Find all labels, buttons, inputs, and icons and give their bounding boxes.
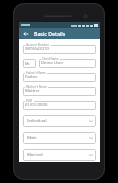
- staticText: DOB: [26, 99, 33, 103]
- staticText: 01/01/2000: [25, 102, 48, 108]
- staticText: Individual: [27, 118, 47, 124]
- staticText: Mother: [25, 88, 40, 94]
- staticText: Married: [27, 152, 43, 158]
- button[interactable]: Married: [23, 149, 96, 161]
- button[interactable]: Client Name: [39, 57, 96, 68]
- staticText: Father's Name: [26, 71, 46, 75]
- staticText: 9876543210: [25, 46, 49, 52]
- button[interactable]: DOB: [23, 99, 96, 110]
- staticText: Father: [25, 74, 38, 80]
- staticText: Account Number: [26, 43, 50, 47]
- staticText: Demo User: [41, 60, 64, 66]
- button[interactable]: Male: [23, 132, 96, 144]
- button[interactable]: Mr.: [23, 57, 36, 68]
- button[interactable]: Individual: [23, 115, 96, 127]
- staticText: Mr.: [25, 61, 30, 66]
- button[interactable]: Father's Name: [23, 71, 96, 82]
- staticText: Client Name: [42, 57, 59, 61]
- button[interactable]: Account Number: [23, 43, 96, 54]
- staticText: Basic Details: [34, 30, 66, 37]
- staticText: Mother's Name: [26, 85, 47, 89]
- staticText: Male: [27, 135, 37, 141]
- button[interactable]: Back: [22, 30, 30, 38]
- button[interactable]: Mother's Name: [23, 85, 96, 96]
